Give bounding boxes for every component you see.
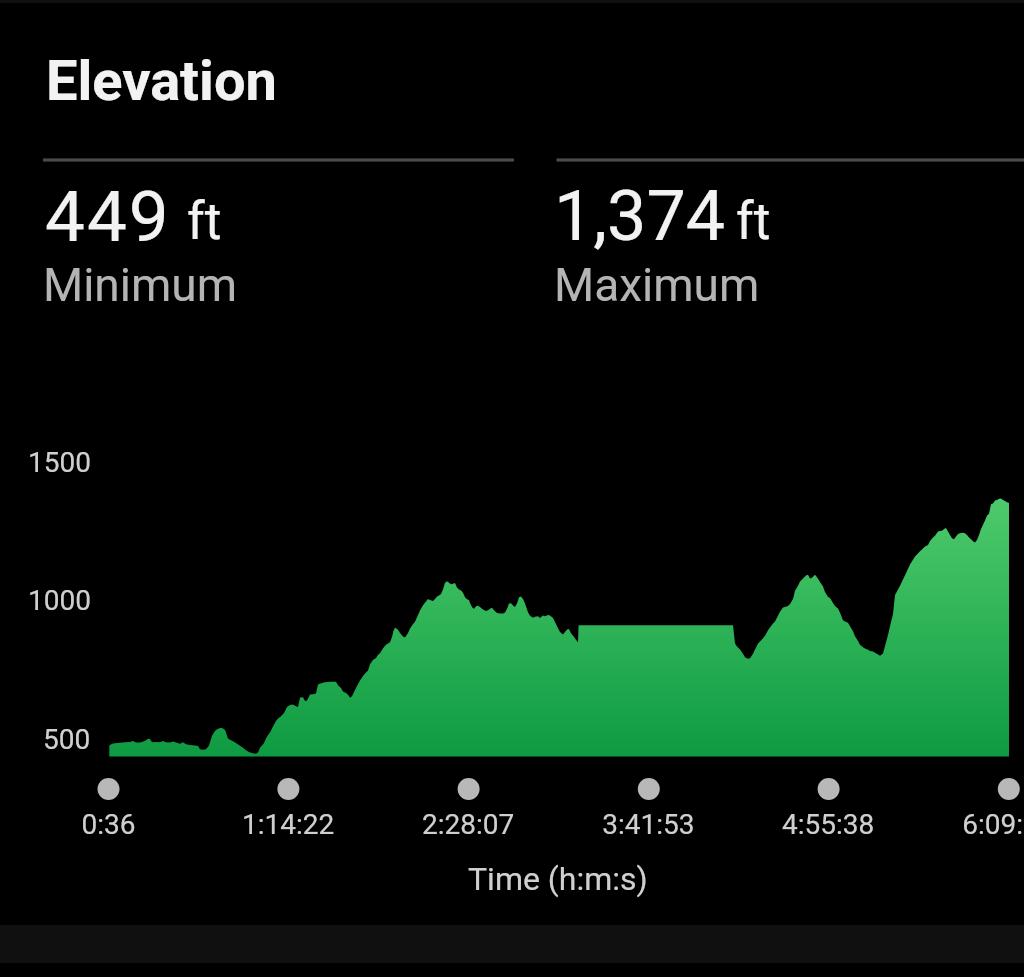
button[interactable]: Minimum elevation 449 feet	[43, 150, 514, 320]
button[interactable]: Maximum elevation 1,374 feet	[556, 150, 1024, 320]
button[interactable]: Elevation over time chart	[20, 430, 1024, 850]
button[interactable]: Elevation	[40, 36, 302, 118]
